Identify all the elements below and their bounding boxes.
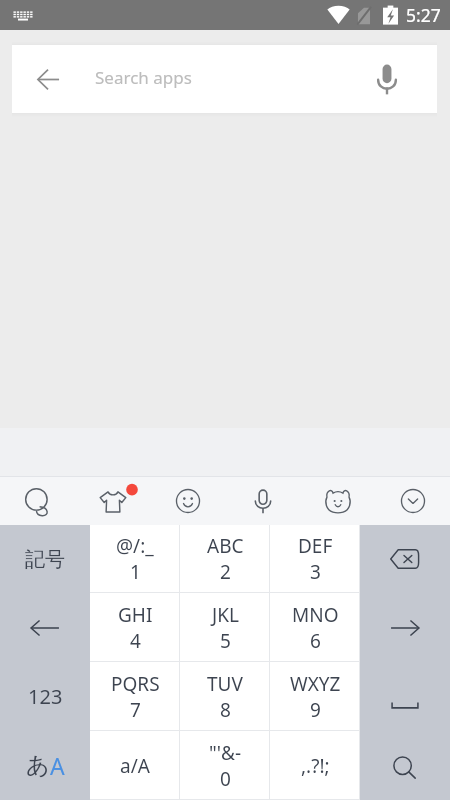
button[interactable]: Chat	[0, 476, 75, 525]
button[interactable]: Collapse keyboard	[375, 476, 450, 525]
staticText: PQRS	[111, 671, 160, 697]
staticText: DEF	[298, 533, 333, 559]
staticText: 4	[130, 628, 141, 654]
staticText: a/A	[120, 753, 150, 779]
button[interactable]: Voice search	[361, 45, 413, 113]
staticText: A	[50, 750, 65, 781]
button[interactable]: Backspace	[360, 525, 450, 593]
button[interactable]: 123	[0, 662, 90, 731]
button[interactable]: DEF	[270, 525, 360, 593]
staticText: 6	[310, 628, 321, 654]
staticText: ,.?!;	[301, 753, 330, 779]
button[interactable]: JKL	[180, 593, 270, 662]
button[interactable]: Stickers	[75, 476, 150, 525]
staticText: あ	[26, 751, 50, 780]
staticText: "'&-	[209, 740, 242, 766]
button[interactable]: Back	[12, 45, 437, 113]
staticText: WXYZ	[290, 671, 341, 697]
staticText: 2	[220, 559, 231, 585]
button[interactable]: ABC	[180, 525, 270, 593]
button[interactable]: 記号	[0, 525, 90, 593]
button[interactable]: WXYZ	[270, 662, 360, 731]
button[interactable]: Back	[24, 45, 72, 113]
button[interactable]: a/A	[90, 731, 180, 800]
button[interactable]: Search	[360, 731, 450, 800]
button[interactable]: GHI	[90, 593, 180, 662]
staticText: 5	[220, 628, 231, 654]
button[interactable]: TUV	[180, 662, 270, 731]
staticText: 5:27	[406, 3, 441, 27]
button[interactable]: PQRS	[90, 662, 180, 731]
staticText: JKL	[212, 602, 239, 628]
staticText: MNO	[292, 602, 339, 628]
staticText: 記号	[25, 547, 65, 572]
staticText: 8	[220, 697, 231, 723]
staticText: ABC	[207, 533, 244, 559]
button[interactable]: Move cursor right	[360, 593, 450, 662]
button[interactable]: Move cursor left	[0, 593, 90, 662]
staticText: 9	[310, 697, 321, 723]
button[interactable]: "'&-	[180, 731, 270, 800]
button[interactable]: MNO	[270, 593, 360, 662]
staticText: GHI	[118, 602, 153, 628]
button[interactable]: Stickers bear	[300, 476, 375, 525]
button[interactable]: あ	[0, 731, 90, 800]
staticText: TUV	[207, 671, 243, 697]
button[interactable]: Voice input	[225, 476, 300, 525]
staticText: 1	[130, 559, 141, 585]
button[interactable]: Space	[360, 662, 450, 731]
staticText: 3	[310, 559, 321, 585]
staticText: @/:_	[116, 533, 154, 559]
button[interactable]: Emoji	[150, 476, 225, 525]
staticText: 0	[220, 766, 231, 792]
staticText: 123	[28, 683, 63, 710]
staticText: 7	[130, 697, 141, 723]
button[interactable]: ,.?!;	[270, 731, 360, 800]
button[interactable]: @/:_	[90, 525, 180, 593]
staticText: Search apps	[95, 66, 192, 89]
